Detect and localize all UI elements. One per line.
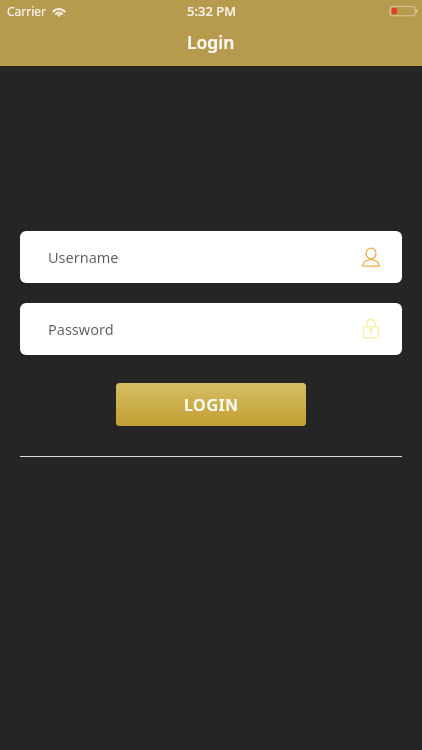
other: Password — [363, 318, 379, 338]
button[interactable]: LOGIN — [116, 383, 306, 426]
staticText: Password — [48, 319, 114, 339]
staticText: Carrier — [7, 3, 47, 19]
button[interactable]: Password — [20, 303, 402, 355]
button[interactable]: Username — [20, 231, 402, 283]
staticText: LOGIN — [184, 394, 239, 416]
staticText: Username — [48, 247, 119, 267]
other: Username — [362, 248, 380, 267]
staticText: 5:32 PM — [187, 2, 237, 20]
staticText: Login — [187, 30, 235, 54]
